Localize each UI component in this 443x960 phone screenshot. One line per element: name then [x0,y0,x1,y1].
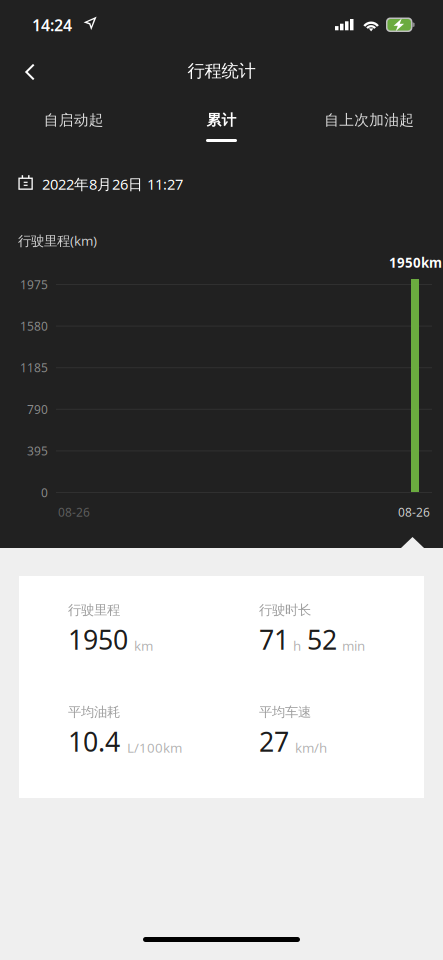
staticText: 27 [259,724,289,759]
staticText: min [342,637,365,654]
staticText: 0 [41,484,48,500]
staticText: 1185 [20,360,48,376]
staticText: 平均油耗 [68,704,120,720]
staticText: km/h [295,739,327,756]
staticText: 1580 [20,318,48,334]
staticText: L/100km [127,739,182,756]
staticText: 395 [27,443,48,459]
staticText: 1975 [20,276,48,292]
staticText: 1950km [389,254,442,271]
staticText: 08-26 [398,504,430,520]
staticText: 行驶里程 [68,602,120,618]
button[interactable]: 自启动起 [0,112,148,142]
staticText: 52 [307,622,337,657]
staticText: h [293,637,301,654]
staticText: 2022年8月26日 11:27 [42,174,183,194]
staticText: km [134,637,153,654]
staticText: 790 [27,401,48,417]
staticText: 行驶时长 [259,602,311,618]
staticText: 行驶里程(km) [18,232,97,249]
button[interactable]: 累计 [148,112,295,142]
staticText: 1950 [68,622,128,657]
staticText: 自启动起 [44,111,104,129]
button[interactable]: Back [8,50,52,94]
staticText: 08-26 [58,504,90,520]
button[interactable]: 自上次加油起 [295,112,443,142]
staticText: 行程统计 [187,60,255,82]
staticText: 平均车速 [259,704,311,720]
staticText: 14:24 [32,14,72,36]
staticText: 自上次加油起 [324,111,414,129]
staticText: 71 [259,622,289,657]
staticText: 累计 [206,111,236,129]
staticText: 10.4 [68,724,120,759]
